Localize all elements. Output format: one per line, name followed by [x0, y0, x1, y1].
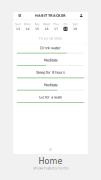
staticText: 17 — [54, 27, 58, 31]
staticText: 19 — [73, 27, 77, 31]
staticText: Sleep for 8 hours — [36, 70, 65, 75]
staticText: 18 — [63, 27, 67, 31]
staticText: Wed — [43, 22, 50, 26]
staticText: Go for a walk — [39, 95, 62, 99]
button[interactable]: Mon — [23, 21, 32, 32]
staticText: Fri — [63, 22, 67, 26]
button[interactable]: Thu — [51, 21, 61, 32]
staticText: 14 — [25, 27, 29, 31]
staticText: Mon — [24, 22, 31, 26]
staticText: HABIT TRACKER — [35, 14, 66, 18]
button[interactable]: Meditate — [13, 56, 88, 68]
staticText: show habits to do — [33, 166, 68, 170]
button[interactable]: Sun — [13, 21, 23, 32]
button[interactable]: Menu — [17, 13, 23, 19]
button[interactable]: Sleep for 8 hours — [13, 68, 88, 80]
staticText: Sun — [15, 22, 21, 26]
button[interactable]: Fri — [61, 21, 70, 32]
staticText: 13 — [16, 27, 20, 31]
staticText: Fri Jul 18 2025 — [39, 37, 62, 40]
staticText: Meditate — [43, 83, 57, 87]
button[interactable]: Wed — [42, 21, 51, 32]
staticText: Thu — [53, 22, 59, 26]
staticText: Drink water — [40, 46, 61, 50]
staticText: Sat — [72, 22, 77, 26]
staticText: Tue — [34, 22, 39, 26]
staticText: Home — [38, 156, 62, 166]
staticText: Meditate — [43, 58, 57, 62]
staticText: 15 — [35, 27, 39, 31]
button[interactable]: Tue — [32, 21, 42, 32]
button[interactable]: Drink water — [13, 43, 88, 56]
button[interactable]: Sat — [70, 21, 80, 32]
staticText: 16 — [44, 27, 48, 31]
button[interactable]: Profile — [78, 13, 84, 19]
button[interactable]: Go for a walk — [13, 93, 88, 105]
button[interactable]: Meditate — [13, 80, 88, 93]
